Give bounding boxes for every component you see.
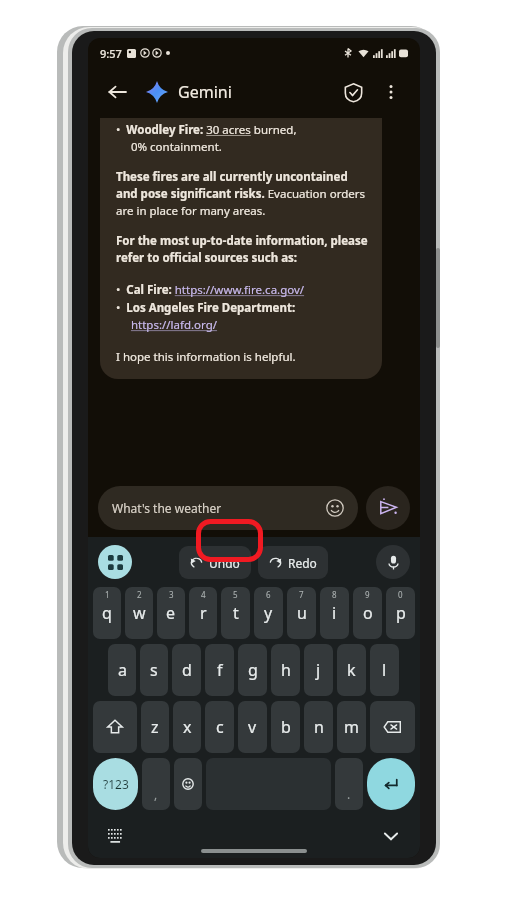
staticText: g — [248, 659, 258, 681]
button[interactable]: r — [189, 587, 217, 639]
staticText: s — [150, 659, 158, 681]
staticText: 9 — [365, 589, 370, 600]
staticText: These fires are all currently uncontaine… — [116, 169, 370, 219]
button[interactable]: s — [140, 644, 168, 696]
button[interactable]: Privacy shield — [334, 73, 372, 111]
button[interactable]: , — [142, 758, 170, 810]
button[interactable]: d — [172, 644, 201, 696]
staticText: q — [102, 602, 112, 624]
staticText: p — [396, 602, 406, 624]
staticText: • Los Angeles Fire Department: https://l… — [116, 300, 296, 333]
button[interactable]: b — [271, 701, 300, 753]
button[interactable]: Shift — [93, 701, 137, 753]
button[interactable]: More options — [372, 73, 410, 111]
staticText: y — [264, 602, 273, 624]
staticText: Redo — [288, 555, 317, 571]
button[interactable]: Enter — [367, 758, 415, 810]
staticText: What's the weather — [112, 500, 222, 516]
staticText: 1 — [105, 589, 110, 600]
staticText: a — [118, 659, 127, 681]
staticText: z — [151, 716, 159, 738]
staticText: i — [332, 602, 337, 624]
staticText: Undo — [209, 555, 240, 571]
staticText: 9:57 — [100, 46, 122, 61]
staticText: u — [297, 602, 307, 624]
staticText: 7 — [299, 589, 304, 600]
button[interactable]: p — [386, 587, 415, 639]
button[interactable]: i — [320, 587, 349, 639]
button[interactable]: Hide keyboard — [376, 821, 406, 851]
button[interactable]: Emoji keyboard — [174, 758, 202, 810]
button[interactable]: c — [205, 701, 234, 753]
button[interactable]: Apps — [98, 545, 132, 579]
button[interactable]: a — [108, 644, 136, 696]
button[interactable]: n — [304, 701, 333, 753]
staticText: 2 — [137, 589, 142, 600]
button[interactable]: x — [173, 701, 201, 753]
button[interactable]: h — [271, 644, 300, 696]
button[interactable]: Backspace — [370, 701, 415, 753]
staticText: e — [166, 602, 176, 624]
staticText: j — [316, 659, 321, 681]
staticText: I hope this information is helpful. — [116, 349, 296, 365]
staticText: Gemini — [178, 81, 232, 103]
button[interactable]: Undo — [179, 546, 251, 579]
other: Emoji — [326, 499, 344, 517]
staticText: v — [248, 716, 257, 738]
button[interactable]: What's the weather — [98, 486, 358, 530]
staticText: l — [382, 659, 387, 681]
button[interactable]: Switch keyboard — [102, 823, 128, 849]
button[interactable]: m — [337, 701, 366, 753]
button[interactable]: z — [141, 701, 169, 753]
button[interactable]: q — [93, 587, 121, 639]
button[interactable]: Redo — [258, 546, 328, 579]
staticText: o — [363, 602, 373, 624]
staticText: • Cal Fire: https://www.fire.ca.gov/ — [116, 282, 305, 298]
button[interactable]: g — [238, 644, 267, 696]
staticText: 4 — [201, 589, 206, 600]
staticText: b — [281, 716, 291, 738]
staticText: ?123 — [103, 776, 129, 792]
button[interactable]: o — [353, 587, 382, 639]
staticText: x — [183, 716, 192, 738]
button[interactable]: Back — [98, 73, 136, 111]
staticText: 3 — [169, 589, 174, 600]
staticText: r — [200, 602, 207, 624]
button[interactable]: Voice input — [376, 545, 410, 579]
staticText: t — [233, 602, 239, 624]
staticText: w — [133, 602, 146, 624]
button[interactable]: y — [254, 587, 283, 639]
staticText: , — [154, 786, 158, 802]
staticText: d — [182, 659, 192, 681]
button[interactable]: . — [335, 758, 363, 810]
staticText: 0 — [398, 589, 403, 600]
staticText: • Woodley Fire: 30 acres burned, 0% cont… — [116, 122, 297, 155]
staticText: 8 — [332, 589, 337, 600]
staticText: 5 — [233, 589, 238, 600]
button[interactable]: f — [205, 644, 234, 696]
button[interactable]: ?123 — [93, 758, 138, 810]
button[interactable]: l — [370, 644, 399, 696]
button[interactable]: w — [125, 587, 153, 639]
button[interactable]: e — [157, 587, 185, 639]
staticText: . — [347, 786, 351, 802]
button[interactable]: k — [337, 644, 366, 696]
staticText: m — [344, 716, 359, 738]
button[interactable]: u — [287, 587, 316, 639]
staticText: h — [281, 659, 291, 681]
staticText: 6 — [266, 589, 271, 600]
button[interactable]: Send — [366, 486, 410, 530]
staticText: f — [217, 659, 223, 681]
button[interactable]: v — [238, 701, 267, 753]
staticText: k — [347, 659, 356, 681]
staticText: n — [314, 716, 324, 738]
button[interactable]: j — [304, 644, 333, 696]
staticText: For the most up-to-date information, ple… — [116, 233, 370, 266]
button[interactable]: t — [221, 587, 250, 639]
staticText: c — [216, 716, 224, 738]
